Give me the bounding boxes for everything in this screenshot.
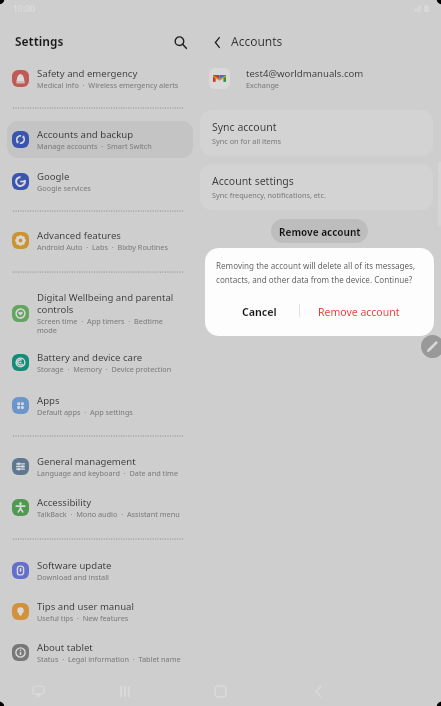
button[interactable]: Back (206, 31, 228, 53)
staticText: Android Auto · Labs · Bixby Routines (37, 242, 168, 252)
staticText: Advanced features (37, 229, 121, 242)
staticText: Google (37, 170, 70, 183)
button[interactable]: Apps (7, 387, 193, 424)
staticText: Accounts and backup (37, 128, 134, 141)
staticText: General management (37, 455, 136, 468)
staticText: Account settings (212, 174, 294, 188)
button[interactable]: Sync account (200, 110, 433, 156)
button[interactable]: Accessibility (7, 489, 193, 526)
staticText: Google services (37, 183, 91, 193)
staticText: Accounts (231, 33, 283, 49)
button[interactable]: Advanced features (7, 222, 193, 259)
button[interactable]: General management (7, 448, 193, 485)
staticText: Battery and device care (37, 351, 143, 364)
staticText: 10:00 (13, 3, 35, 15)
staticText: About tablet (37, 641, 93, 654)
staticText: Sync account (212, 120, 277, 134)
staticText: Medical info · Wireless emergency alerts (37, 80, 179, 90)
staticText: Digital Wellbeing and parental controls (37, 291, 174, 316)
button[interactable]: Safety and emergency (7, 60, 193, 97)
staticText: Screen time · App timers · Bedtime mode (37, 316, 163, 335)
staticText: Useful tips · New features (37, 613, 129, 623)
staticText: Remove account (279, 225, 361, 238)
staticText: TalkBack · Mono audio · Assistant menu (37, 509, 180, 519)
button[interactable]: About tablet (7, 634, 193, 671)
button[interactable]: Digital Wellbeing and parental controls (7, 288, 193, 338)
staticText: Exchange (246, 80, 279, 90)
staticText: Manage accounts · Smart Switch (37, 141, 152, 151)
button[interactable]: Software update (7, 552, 193, 589)
button[interactable]: Remove account (271, 219, 368, 243)
staticText: Apps (37, 394, 60, 407)
staticText: Removing the account will delete all of … (216, 260, 416, 285)
staticText: Sync on for all items (212, 136, 281, 146)
staticText: test4@worldmanuals.com (246, 67, 364, 80)
staticText: Language and keyboard · Date and time (37, 468, 178, 478)
button[interactable]: Accounts and backup (7, 121, 193, 158)
button[interactable]: Edit (421, 335, 441, 358)
button[interactable]: Search (168, 30, 192, 54)
staticText: Cancel (242, 305, 277, 319)
staticText: Settings (15, 33, 64, 49)
button[interactable]: Remove account (308, 299, 409, 325)
button[interactable]: Tips and user manual (7, 593, 193, 630)
button[interactable]: Cancel (225, 299, 293, 325)
button[interactable]: Battery and device care (7, 344, 193, 381)
staticText: Sync frequency, notifications, etc. (212, 190, 326, 200)
staticText: Default apps · App settings (37, 407, 133, 417)
button[interactable]: Google (7, 163, 193, 200)
staticText: Download and install (37, 572, 109, 582)
button[interactable]: Account settings (200, 164, 433, 210)
button[interactable]: test4@worldmanuals.com (209, 61, 441, 95)
staticText: Tips and user manual (37, 600, 134, 613)
staticText: Software update (37, 559, 112, 572)
staticText: Accessibility (37, 496, 92, 509)
staticText: Safety and emergency (37, 67, 138, 80)
staticText: Status · Legal information · Tablet name (37, 654, 181, 664)
staticText: Storage · Memory · Device protection (37, 364, 172, 374)
staticText: Remove account (318, 305, 400, 319)
